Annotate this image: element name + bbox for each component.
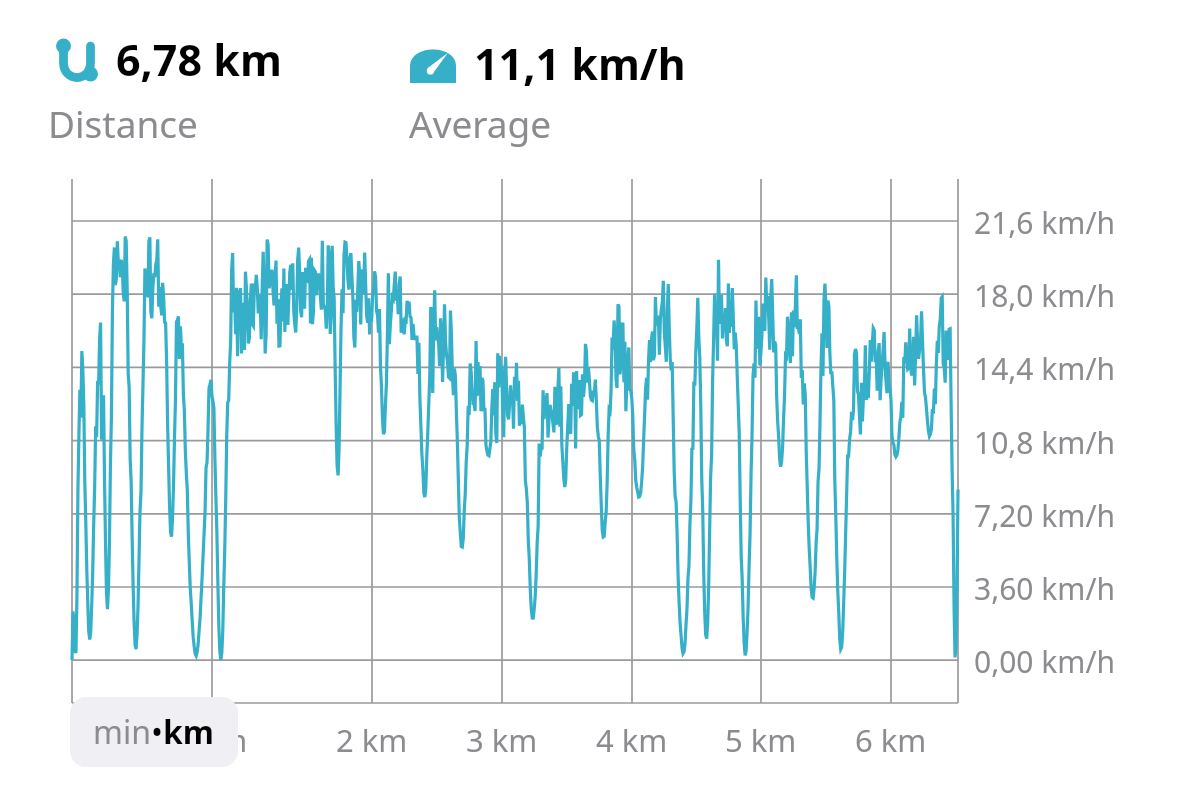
staticText: 3,60 km/h — [974, 568, 1116, 609]
button[interactable]: min•km — [70, 697, 238, 767]
staticText: 4 km — [596, 719, 668, 761]
staticText: Average — [409, 98, 552, 148]
staticText: 7,20 km/h — [974, 495, 1116, 536]
button[interactable]: 6,78 km — [52, 30, 282, 89]
staticText: 11,1 km/h — [474, 34, 686, 93]
staticText: 6 km — [855, 719, 927, 761]
button[interactable]: 11,1 km/h — [410, 34, 686, 93]
staticText: min•km — [93, 710, 215, 754]
staticText: 0,00 km/h — [974, 641, 1116, 682]
staticText: 14,4 km/h — [974, 348, 1116, 389]
staticText: 10,8 km/h — [974, 422, 1116, 463]
staticText: 5 km — [725, 719, 797, 761]
staticText: 6,78 km — [116, 30, 282, 89]
staticText: 2 km — [336, 719, 408, 761]
staticText: 1 km — [176, 719, 248, 761]
staticText: 21,6 km/h — [974, 202, 1116, 243]
staticText: 18,0 km/h — [974, 275, 1116, 316]
staticText: 3 km — [466, 719, 538, 761]
staticText: Distance — [48, 98, 198, 148]
